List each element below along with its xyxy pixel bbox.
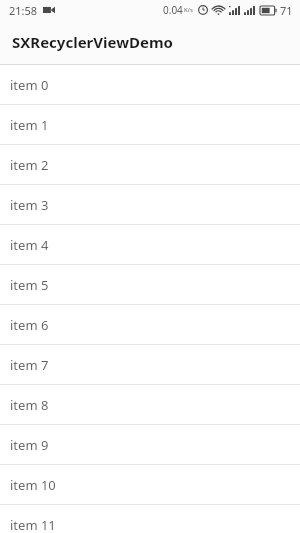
staticText: item 10 xyxy=(10,476,56,494)
button[interactable]: item 2 xyxy=(0,145,300,184)
staticText: 71 xyxy=(280,3,293,18)
button[interactable]: item 6 xyxy=(0,305,300,344)
staticText: SXRecyclerViewDemo xyxy=(12,32,173,52)
button[interactable]: item 5 xyxy=(0,265,300,304)
button[interactable]: item 0 xyxy=(0,65,300,104)
staticText: item 1 xyxy=(10,116,49,134)
button[interactable]: item 11 xyxy=(0,505,300,533)
staticText: 0.04 xyxy=(163,3,183,17)
button[interactable]: item 4 xyxy=(0,225,300,264)
staticText: K/s xyxy=(184,6,193,14)
button[interactable]: item 10 xyxy=(0,465,300,504)
staticText: item 11 xyxy=(10,516,56,533)
staticText: item 7 xyxy=(10,356,49,374)
other: Mobile signal xyxy=(244,6,255,15)
button[interactable]: item 3 xyxy=(0,185,300,224)
other: Mobile signal xyxy=(229,6,240,15)
button[interactable]: item 7 xyxy=(0,345,300,384)
staticText: item 3 xyxy=(10,196,49,214)
staticText: item 6 xyxy=(10,316,49,334)
staticText: item 4 xyxy=(10,236,49,254)
staticText: item 9 xyxy=(10,436,49,454)
other: Alarm set xyxy=(198,5,208,15)
button[interactable]: item 1 xyxy=(0,105,300,144)
staticText: item 5 xyxy=(10,276,49,294)
button[interactable]: item 9 xyxy=(0,425,300,464)
staticText: 21:58 xyxy=(9,3,38,18)
other: Wi-Fi xyxy=(213,6,224,15)
button[interactable]: item 8 xyxy=(0,385,300,424)
staticText: item 8 xyxy=(10,396,49,414)
other: Screen recording xyxy=(43,6,55,14)
other: Battery 71 percent xyxy=(260,6,277,15)
button[interactable]: SXRecyclerViewDemo xyxy=(0,20,300,64)
staticText: item 0 xyxy=(10,76,49,94)
staticText: item 2 xyxy=(10,156,49,174)
